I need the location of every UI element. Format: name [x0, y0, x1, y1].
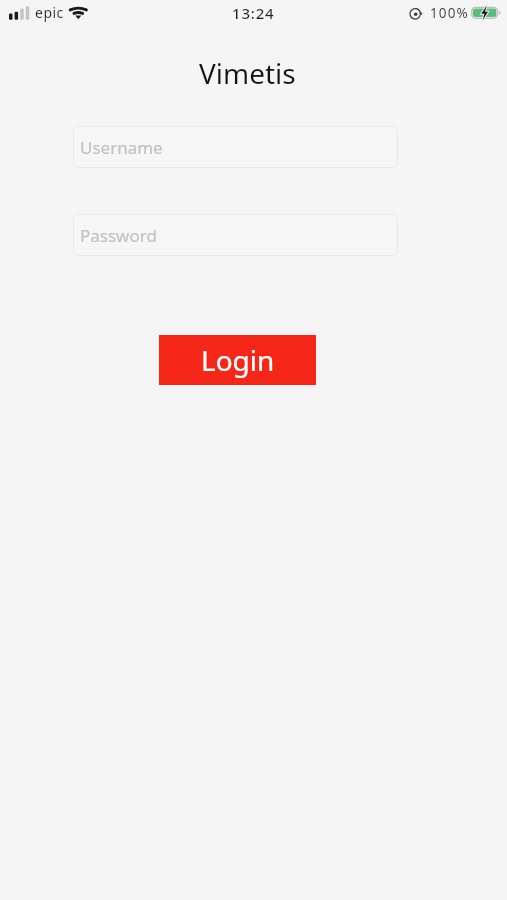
staticText: 100%	[430, 4, 469, 22]
staticText: 13:24	[232, 3, 275, 23]
staticText: Username	[80, 136, 163, 159]
button[interactable]: Password	[73, 214, 398, 256]
staticText: Password	[80, 224, 157, 247]
staticText: epic	[35, 3, 64, 22]
other: Location	[406, 6, 424, 22]
button[interactable]: Username	[73, 126, 398, 168]
staticText: Vimetis	[199, 54, 296, 92]
staticText: Login	[201, 341, 275, 379]
button[interactable]: Login	[159, 335, 316, 385]
